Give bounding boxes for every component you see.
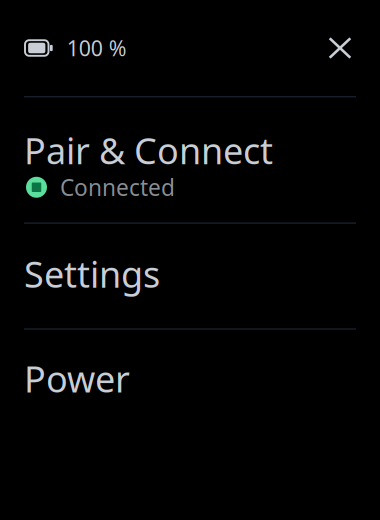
staticText: Connected [60, 172, 175, 202]
staticText: Pair & Connect [24, 126, 273, 174]
button[interactable]: Pair & Connect [0, 97, 380, 222]
staticText: 100 % [67, 34, 127, 62]
button[interactable]: Close [318, 26, 362, 70]
button[interactable]: Settings [0, 224, 380, 328]
staticText: Settings [24, 250, 160, 298]
staticText: Power [24, 355, 130, 402]
button[interactable]: Power [0, 330, 380, 434]
